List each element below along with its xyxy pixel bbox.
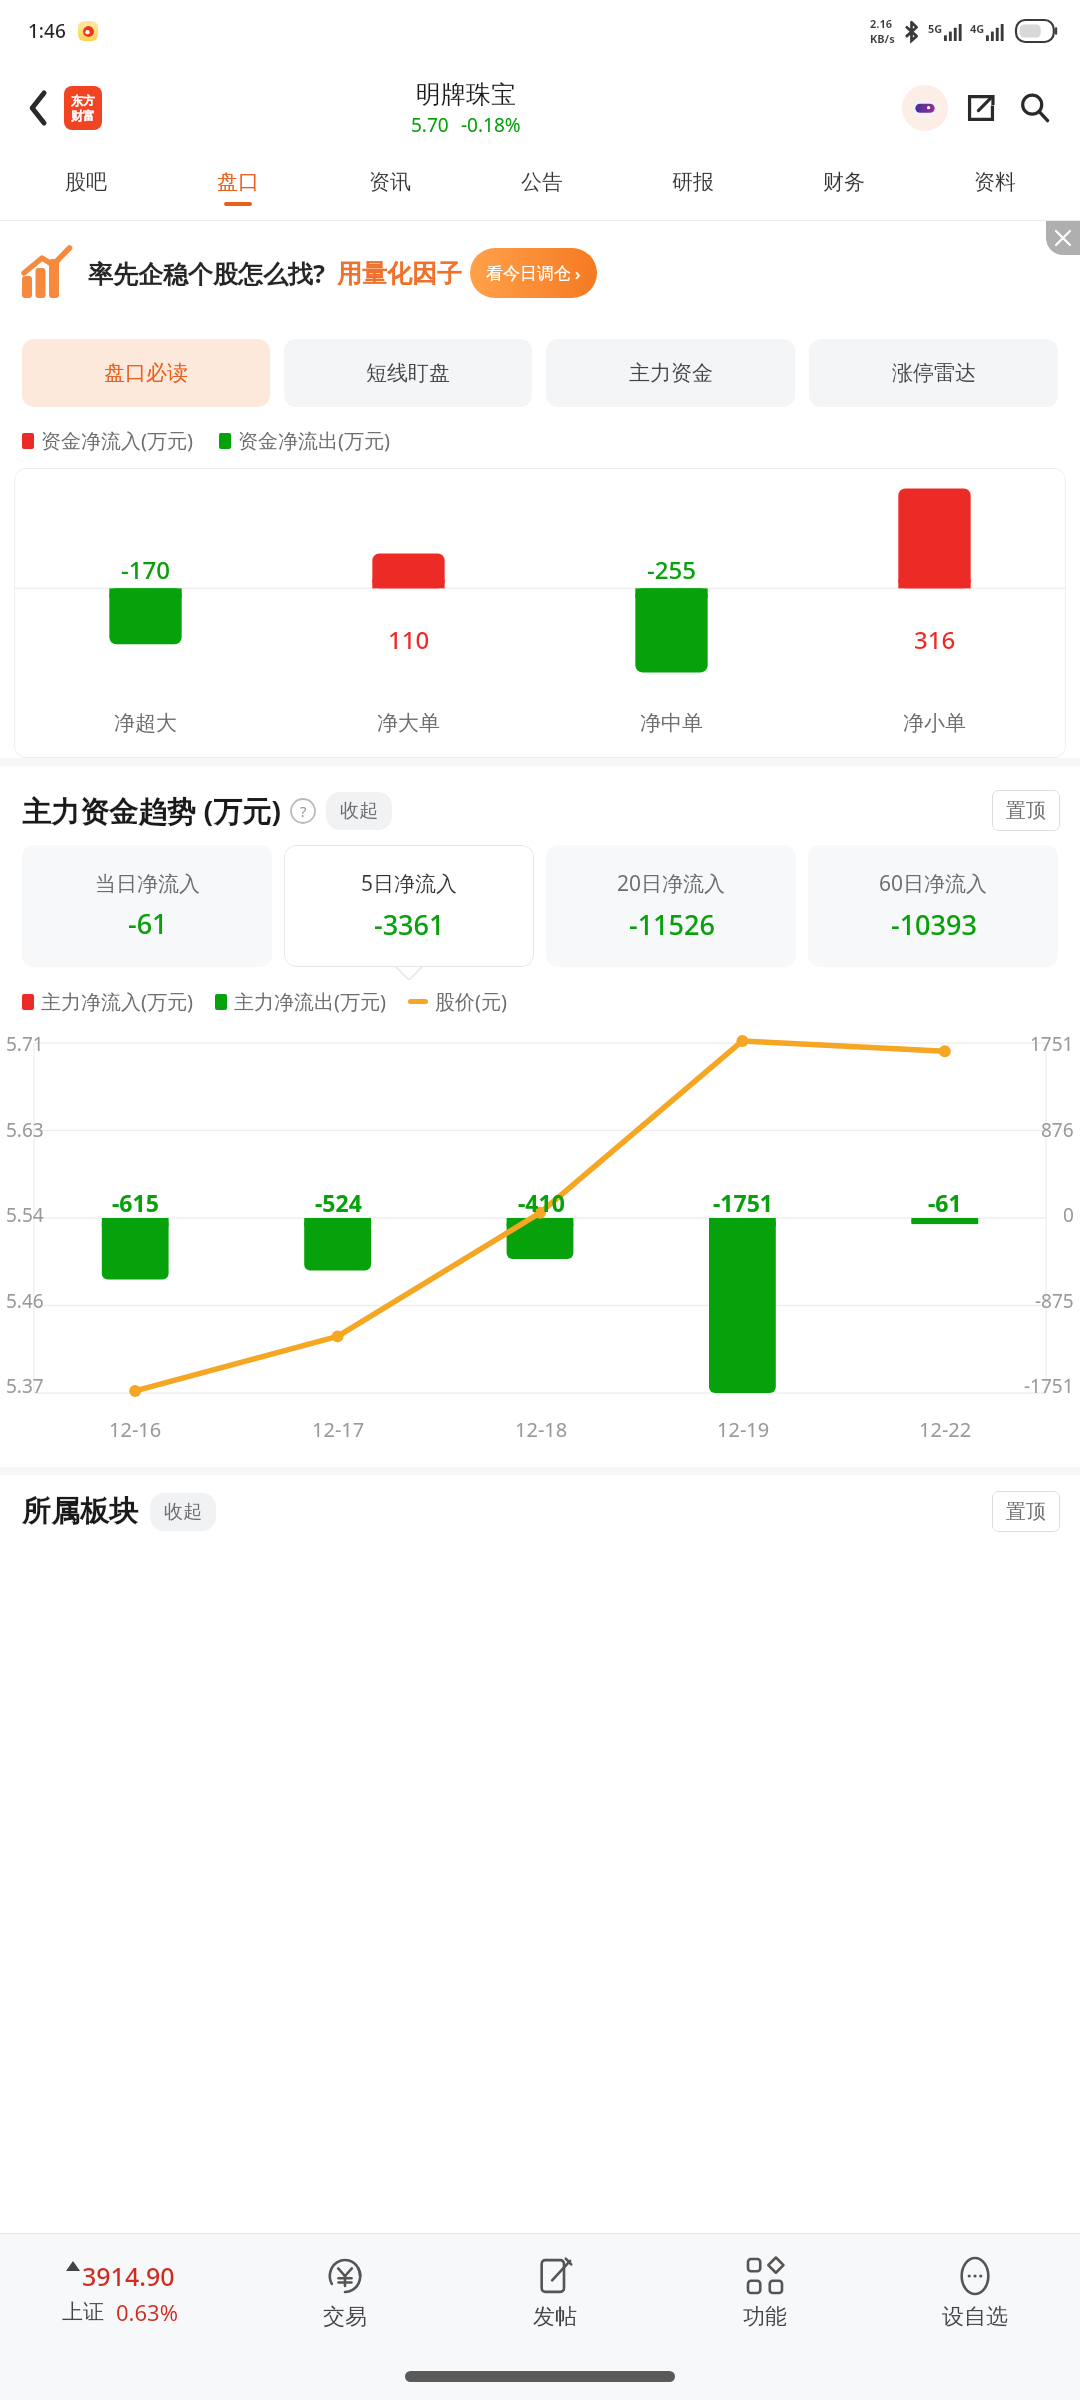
staticText: 资讯	[369, 169, 411, 195]
staticText: -875	[1035, 1288, 1074, 1314]
staticText: 12-17	[312, 1416, 365, 1443]
button[interactable]: 收起	[326, 792, 392, 830]
staticText: 置顶	[1006, 1499, 1046, 1524]
staticText: 净小单	[903, 710, 966, 736]
button[interactable]: 短线盯盘	[284, 339, 532, 407]
staticText: 1751	[1030, 1031, 1074, 1057]
staticText: 资料	[974, 169, 1016, 195]
staticText: 股吧	[65, 169, 107, 195]
staticText: 0.63%	[116, 2297, 178, 2327]
staticText: 5.46	[6, 1288, 44, 1314]
button[interactable]: 置顶	[992, 1491, 1060, 1532]
staticText: 5.37	[6, 1373, 44, 1399]
staticText: 110	[388, 623, 430, 656]
staticText: 主力资金趋势 (万元)	[22, 791, 282, 831]
staticText: 主力净流入(万元)	[41, 988, 193, 1015]
staticText: 发帖	[533, 2303, 577, 2331]
staticText: 资金净流出(万元)	[238, 427, 390, 454]
button[interactable]: 60日净流入	[808, 845, 1058, 967]
staticText: 短线盯盘	[366, 360, 450, 386]
staticText: 20日净流入	[617, 869, 726, 898]
staticText: 率先企稳个股怎么找?	[88, 256, 325, 290]
staticText: 0	[1063, 1202, 1074, 1228]
staticText: 净大单	[377, 710, 440, 736]
button[interactable]: 股吧	[10, 154, 162, 220]
staticText: ?	[300, 801, 307, 821]
button[interactable]: 收起	[150, 1493, 216, 1531]
staticText: 12-16	[109, 1416, 162, 1443]
button[interactable]: 设自选	[870, 2234, 1080, 2352]
staticText: 公告	[521, 169, 563, 195]
staticText: 所属板块	[22, 1493, 138, 1530]
staticText: 置顶	[1006, 798, 1046, 823]
staticText: -0.18%	[461, 112, 521, 138]
staticText: 财富	[71, 108, 95, 123]
button[interactable]: 资讯	[314, 154, 466, 220]
staticText: 财务	[823, 169, 865, 195]
staticText: 净超大	[114, 710, 177, 736]
button[interactable]: 盘口必读	[22, 339, 270, 407]
button[interactable]: Help	[290, 798, 316, 824]
button[interactable]: 功能	[660, 2234, 870, 2352]
staticText: 涨停雷达	[892, 360, 976, 386]
staticText: 12-19	[717, 1416, 770, 1443]
button[interactable]: 主力资金	[546, 339, 795, 407]
staticText: 1:46	[28, 18, 66, 44]
button[interactable]: 资料	[919, 154, 1070, 220]
staticText: -11526	[629, 906, 715, 943]
staticText: 主力净流出(万元)	[234, 988, 386, 1015]
staticText: ›	[575, 262, 581, 285]
button[interactable]: 5日净流入	[284, 845, 534, 967]
button[interactable]: 看今日调仓	[470, 248, 597, 298]
staticText: 12-22	[919, 1416, 972, 1443]
staticText: 3914.90	[82, 2259, 175, 2293]
staticText: 主力资金	[629, 360, 713, 386]
staticText: 明牌珠宝	[416, 79, 516, 110]
staticText: 60日净流入	[879, 869, 988, 898]
button[interactable]: Share	[958, 85, 1004, 131]
staticText: 12-18	[515, 1416, 568, 1443]
staticText: -170	[121, 553, 170, 586]
staticText: 5日净流入	[361, 869, 458, 898]
staticText: KB/s	[870, 31, 895, 46]
staticText: 资金净流入(万元)	[41, 427, 193, 454]
button[interactable]: 涨停雷达	[809, 339, 1058, 407]
staticText: 5.71	[6, 1031, 44, 1057]
button[interactable]: 公告	[466, 154, 617, 220]
staticText: -61	[128, 905, 168, 942]
staticText: 收起	[164, 1500, 202, 1524]
button[interactable]: Search	[1012, 85, 1058, 131]
staticText: 东方	[71, 93, 95, 108]
staticText: 设自选	[942, 2303, 1008, 2331]
staticText: -255	[647, 553, 696, 586]
button[interactable]: AI assistant	[902, 85, 948, 131]
staticText: 316	[914, 623, 956, 656]
button[interactable]: 当日净流入	[22, 845, 272, 967]
button[interactable]: 3914.90	[0, 2234, 240, 2352]
button[interactable]: 发帖	[450, 2234, 660, 2352]
staticText: 2.16	[870, 16, 892, 31]
staticText: 功能	[743, 2303, 787, 2331]
staticText: -3361	[374, 906, 445, 943]
button[interactable]: 盘口	[162, 154, 314, 220]
staticText: -615	[112, 1187, 159, 1218]
staticText: -1751	[713, 1187, 773, 1218]
staticText: -61	[928, 1187, 962, 1218]
staticText: 876	[1041, 1117, 1074, 1143]
staticText: 净中单	[640, 710, 703, 736]
button[interactable]: 研报	[617, 154, 768, 220]
button[interactable]: 20日净流入	[546, 845, 796, 967]
staticText: 上证	[62, 2299, 104, 2325]
staticText: -1751	[1024, 1373, 1074, 1399]
button[interactable]: 交易	[240, 2234, 450, 2352]
button[interactable]: 置顶	[992, 790, 1060, 831]
staticText: 4G	[970, 21, 985, 36]
button[interactable]: Back	[16, 85, 62, 131]
staticText: 当日净流入	[95, 871, 200, 897]
staticText: 用量化因子	[337, 258, 462, 289]
button[interactable]: 财务	[768, 154, 919, 220]
staticText: 研报	[672, 169, 714, 195]
staticText: 5G	[928, 21, 943, 36]
button[interactable]: Close ad	[1046, 221, 1080, 255]
button[interactable]: East Money	[64, 86, 102, 130]
